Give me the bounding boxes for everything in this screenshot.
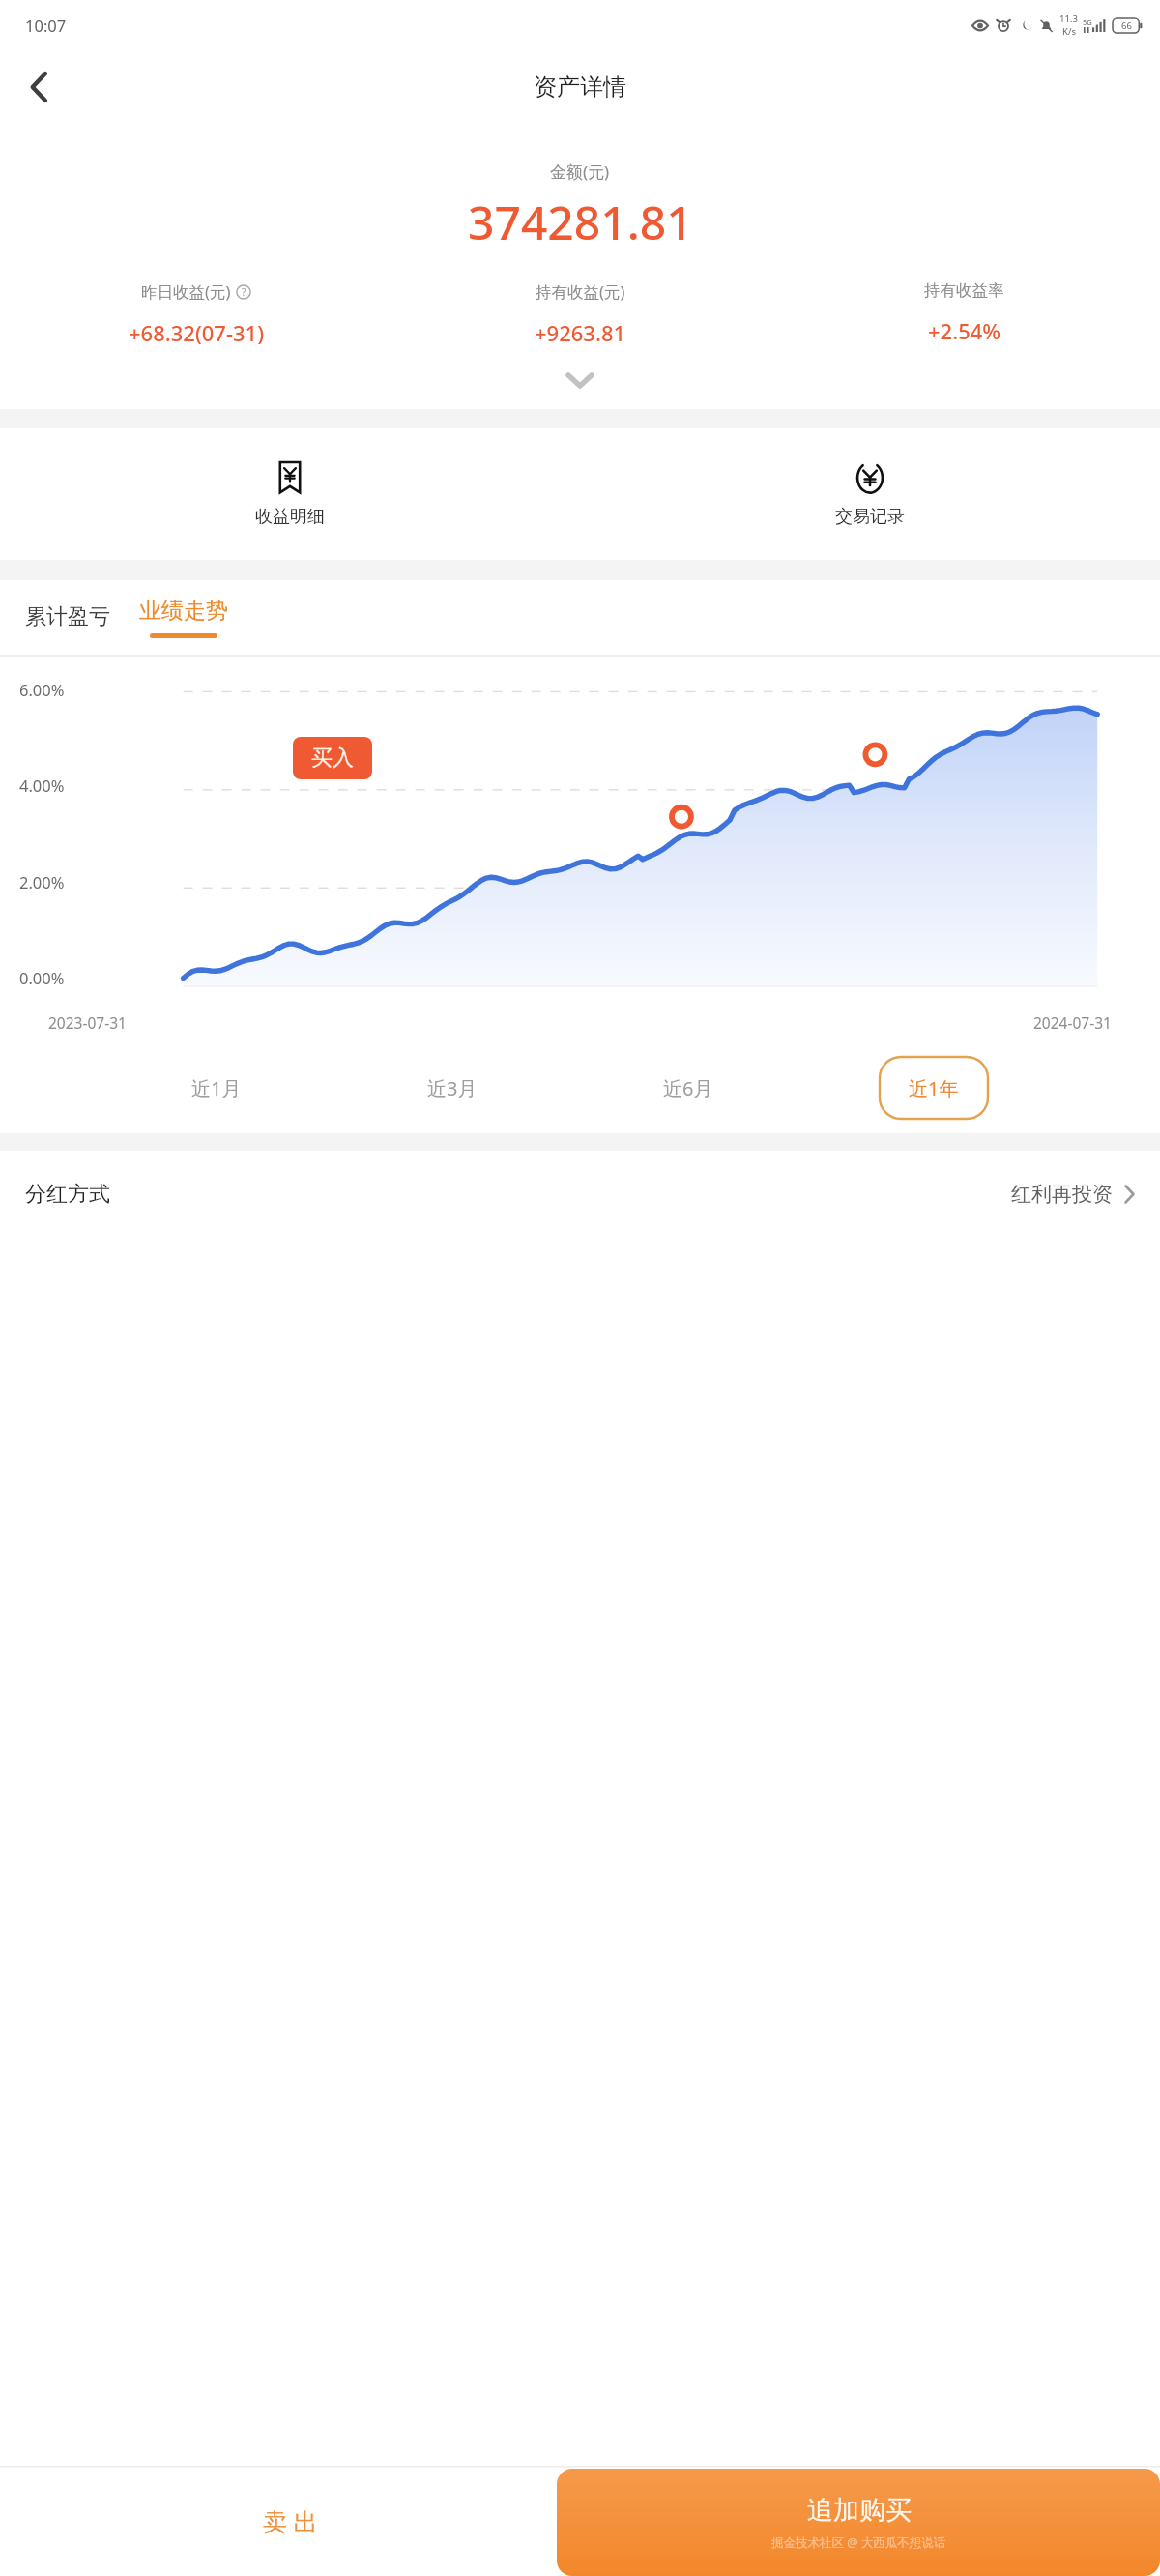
staticText: +9263.81 — [535, 318, 626, 347]
button[interactable]: 近6月 — [644, 1064, 733, 1113]
staticText: 交易记录 — [835, 506, 905, 528]
staticText: 持有收益率 — [924, 280, 1004, 301]
staticText: 掘金技术社区 @ 大西瓜不想说话 — [771, 2534, 946, 2551]
staticText: 分红方式 — [25, 1181, 110, 1208]
button[interactable]: 返回 — [14, 62, 64, 112]
button[interactable]: 累计盈亏 — [12, 594, 124, 640]
button[interactable]: 卖 出 — [0, 2466, 580, 2576]
staticText: 66 — [1121, 19, 1132, 32]
staticText: 资产详情 — [534, 73, 626, 102]
staticText: 2023-07-31 — [48, 1012, 127, 1033]
staticText: 近1年 — [909, 1075, 959, 1101]
button[interactable]: 近3月 — [408, 1064, 497, 1113]
staticText: 红利再投资 — [1011, 1182, 1113, 1207]
staticText: +68.32(07-31) — [129, 318, 265, 347]
staticText: 374281.81 — [468, 190, 693, 253]
staticText: 近3月 — [427, 1075, 478, 1101]
staticText: 2024-07-31 — [1033, 1012, 1112, 1033]
staticText: 6.00% — [19, 679, 65, 700]
staticText: 11.3 — [1059, 13, 1078, 25]
button[interactable]: 展开更多 — [0, 351, 1160, 409]
staticText: K/s — [1062, 25, 1076, 38]
button[interactable]: 昨日收益(元) — [4, 277, 389, 351]
staticText: 追加购买 — [807, 2494, 912, 2527]
staticText: 持有收益(元) — [536, 280, 625, 303]
button[interactable]: 分红方式 — [0, 1151, 1160, 1238]
button[interactable]: 买入 — [293, 737, 372, 779]
staticText: 近1月 — [191, 1075, 242, 1101]
button[interactable]: 持有收益率 — [772, 277, 1156, 349]
staticText: 10:07 — [25, 15, 67, 36]
staticText: 卖 出 — [263, 2504, 318, 2537]
staticText: +2.54% — [928, 316, 1001, 345]
staticText: 2.00% — [19, 871, 65, 893]
staticText: 0.00% — [19, 967, 65, 988]
staticText: 累计盈亏 — [25, 603, 110, 630]
button[interactable]: 持有收益(元) — [389, 277, 772, 351]
staticText: 昨日收益(元) — [141, 280, 231, 303]
button[interactable]: 业绩走势 — [130, 595, 238, 640]
button[interactable]: 追加购买 — [557, 2469, 1160, 2576]
staticText: 金额(元) — [550, 161, 610, 183]
button[interactable]: 近1年 — [880, 1057, 988, 1119]
staticText: ? — [242, 285, 246, 299]
staticText: 业绩走势 — [139, 597, 228, 625]
button[interactable]: 交易记录 — [580, 428, 1160, 560]
button[interactable]: 近1月 — [172, 1064, 261, 1113]
staticText: 买入 — [311, 745, 354, 772]
staticText: 近6月 — [663, 1075, 713, 1101]
staticText: 5G — [1083, 17, 1092, 27]
staticText: 4.00% — [19, 775, 65, 796]
button[interactable]: 收益明细 — [0, 428, 580, 560]
staticText: 收益明细 — [255, 506, 325, 528]
